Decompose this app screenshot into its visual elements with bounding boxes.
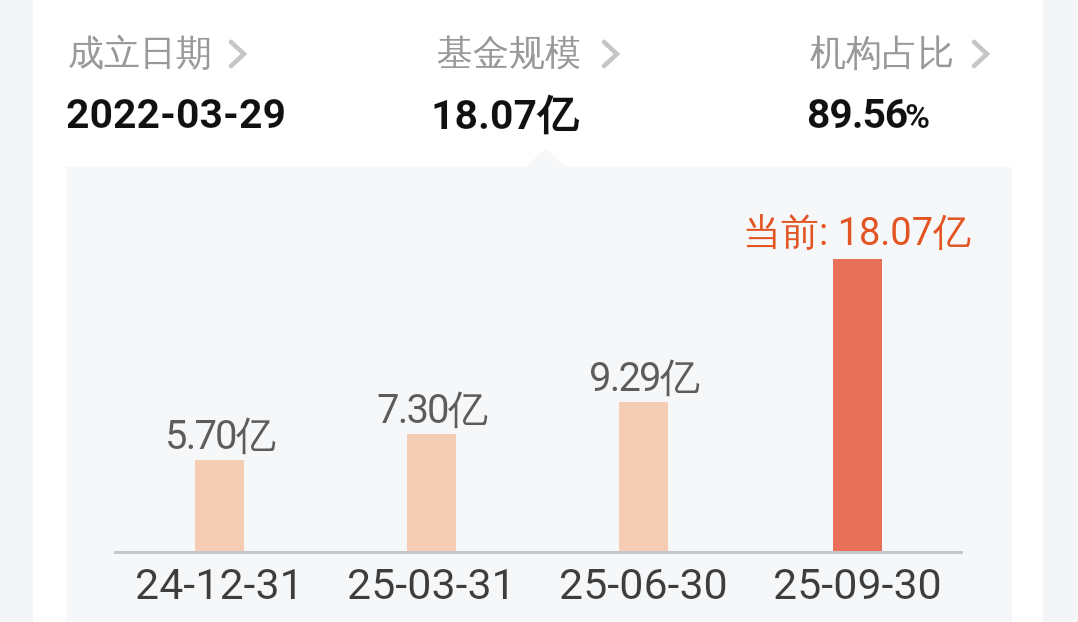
- button[interactable]: [805, 28, 993, 135]
- staticText: 9.29亿: [589, 352, 698, 402]
- staticText: 基金规模: [437, 30, 581, 75]
- staticText: 成立日期: [68, 30, 212, 75]
- staticText: 7.30亿: [377, 384, 486, 434]
- staticText: 25-06-30: [559, 559, 728, 609]
- button[interactable]: [431, 28, 623, 135]
- staticText: 24-12-31: [135, 559, 304, 609]
- staticText: %: [905, 96, 931, 136]
- staticText: 25-09-30: [773, 559, 942, 609]
- staticText: 18.07亿: [431, 90, 579, 142]
- staticText: 机构占比: [810, 30, 954, 75]
- staticText: 25-03-31: [347, 559, 516, 609]
- staticText: 当前: 18.07亿: [743, 208, 972, 256]
- staticText: 89.56: [807, 90, 908, 138]
- staticText: 2022-03-29: [66, 90, 287, 138]
- button[interactable]: [66, 28, 290, 135]
- staticText: 5.70亿: [165, 410, 274, 460]
